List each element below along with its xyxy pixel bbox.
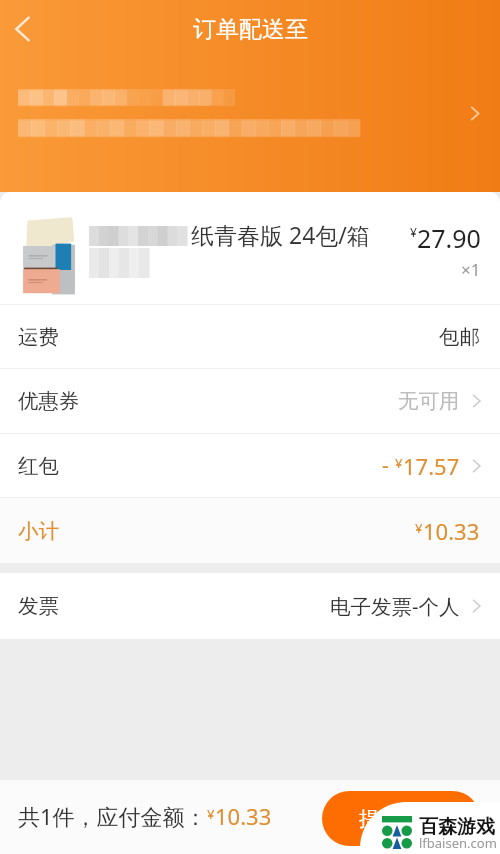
staticText: 共1件，应付金额： — [18, 801, 207, 831]
staticText: ×1 — [461, 258, 481, 281]
staticText: 提交订单 — [359, 806, 443, 832]
staticText: 发票 — [18, 593, 59, 619]
staticText: 订单配送至 — [193, 15, 308, 44]
staticText: - — [382, 451, 395, 480]
staticText: 包邮 — [439, 324, 480, 350]
staticText: 无可用 — [398, 388, 460, 414]
button[interactable]: 优惠券 — [0, 369, 500, 433]
staticText: 10.33 — [423, 516, 480, 546]
staticText: 百森游戏 — [419, 815, 495, 839]
button[interactable]: 运费 — [0, 305, 500, 368]
button[interactable]: 红包 — [0, 434, 500, 497]
staticText: ¥ — [395, 454, 403, 472]
staticText: ¥ — [415, 519, 423, 537]
button[interactable]: Back — [0, 6, 45, 51]
staticText: lfbaisen.com — [419, 834, 497, 852]
button[interactable]: 发票 — [0, 573, 500, 639]
staticText: 红包 — [18, 453, 59, 479]
staticText: 小计 — [18, 518, 59, 544]
staticText: 电子发票-个人 — [330, 592, 460, 620]
staticText: 10.33 — [215, 801, 272, 831]
button[interactable]: 纸青春版 24包/箱 — [0, 192, 500, 304]
staticText: 27.90 — [417, 221, 481, 255]
button[interactable]: 提交订单 — [322, 791, 480, 846]
staticText: ¥ — [207, 805, 215, 823]
button[interactable] — [0, 74, 500, 152]
staticText: 优惠券 — [18, 388, 80, 414]
staticText: ¥ — [410, 224, 417, 240]
staticText: 17.57 — [403, 451, 460, 481]
staticText: 纸青春版 24包/箱 — [191, 219, 370, 250]
staticText: 运费 — [18, 324, 59, 350]
button[interactable]: 小计 — [0, 498, 500, 563]
